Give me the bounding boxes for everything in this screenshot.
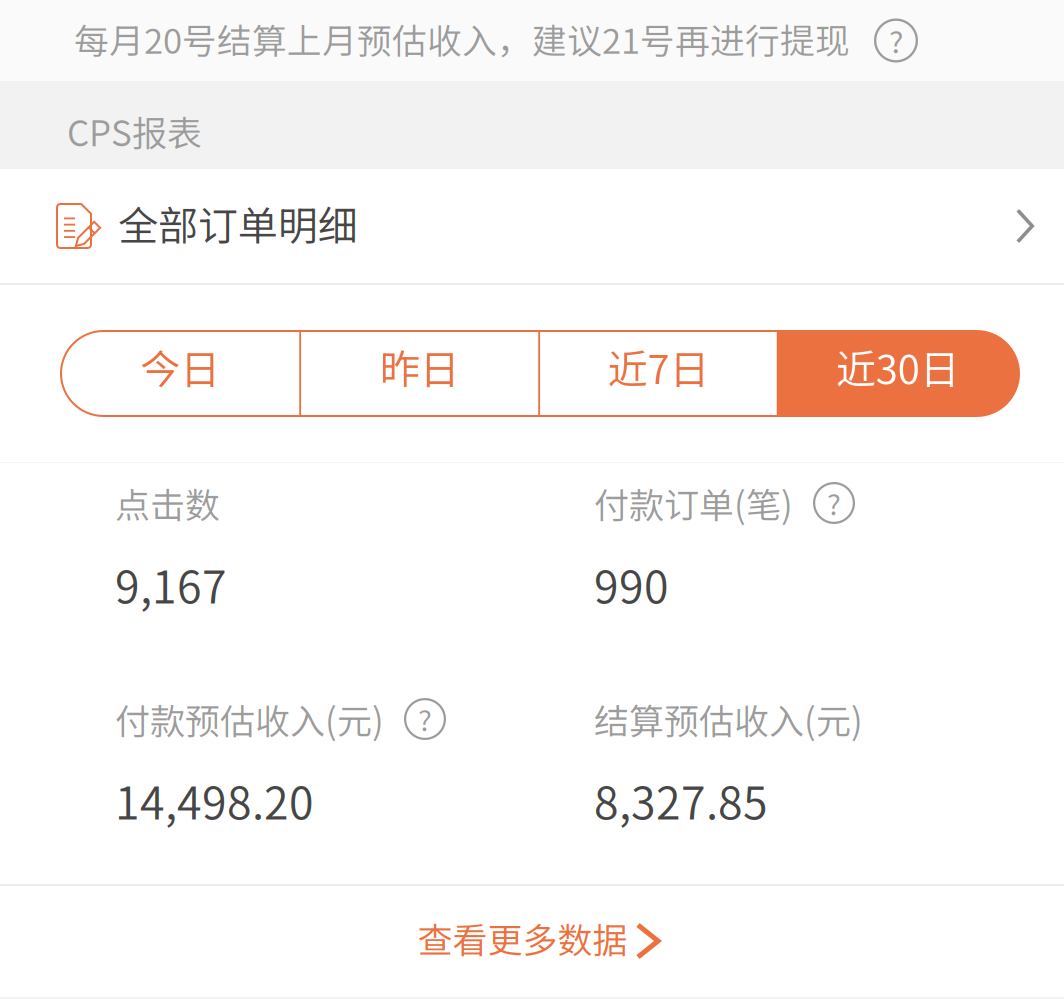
button[interactable]: 昨日 xyxy=(301,331,538,416)
button[interactable]: 付款预估收入(元)说明 xyxy=(404,698,446,740)
staticText: ? xyxy=(827,481,841,524)
button[interactable]: 近7日 xyxy=(540,331,777,416)
button[interactable]: 全部订单明细 xyxy=(0,169,1064,283)
staticText: 付款预估收入(元) xyxy=(115,694,384,744)
staticText: 付款订单(笔) xyxy=(594,478,793,528)
button[interactable]: 近30日 xyxy=(777,331,1019,416)
staticText: 查看更多数据 xyxy=(417,913,627,963)
staticText: 14,498.20 xyxy=(115,768,314,832)
button[interactable]: 查看更多数据 xyxy=(0,886,1064,996)
staticText: 990 xyxy=(594,552,669,616)
staticText: 9,167 xyxy=(115,552,227,616)
staticText: 8,327.85 xyxy=(594,768,768,832)
staticText: ? xyxy=(889,17,903,62)
staticText: 近30日 xyxy=(836,337,960,395)
staticText: CPS报表 xyxy=(67,106,202,156)
button[interactable]: 每月20号结算上月预估收入，建议21号再进行提现 xyxy=(0,0,1064,81)
staticText: 近7日 xyxy=(607,337,709,395)
staticText: 全部订单明细 xyxy=(118,194,358,252)
staticText: 每月20号结算上月预估收入，建议21号再进行提现 xyxy=(74,13,850,64)
button[interactable]: 付款订单(笔)说明 xyxy=(813,482,855,524)
staticText: 结算预估收入(元) xyxy=(594,694,863,744)
staticText: 点击数 xyxy=(115,478,220,528)
staticText: ? xyxy=(418,697,432,740)
staticText: 昨日 xyxy=(380,337,460,395)
button[interactable]: 今日 xyxy=(61,331,299,416)
staticText: 今日 xyxy=(140,337,220,395)
